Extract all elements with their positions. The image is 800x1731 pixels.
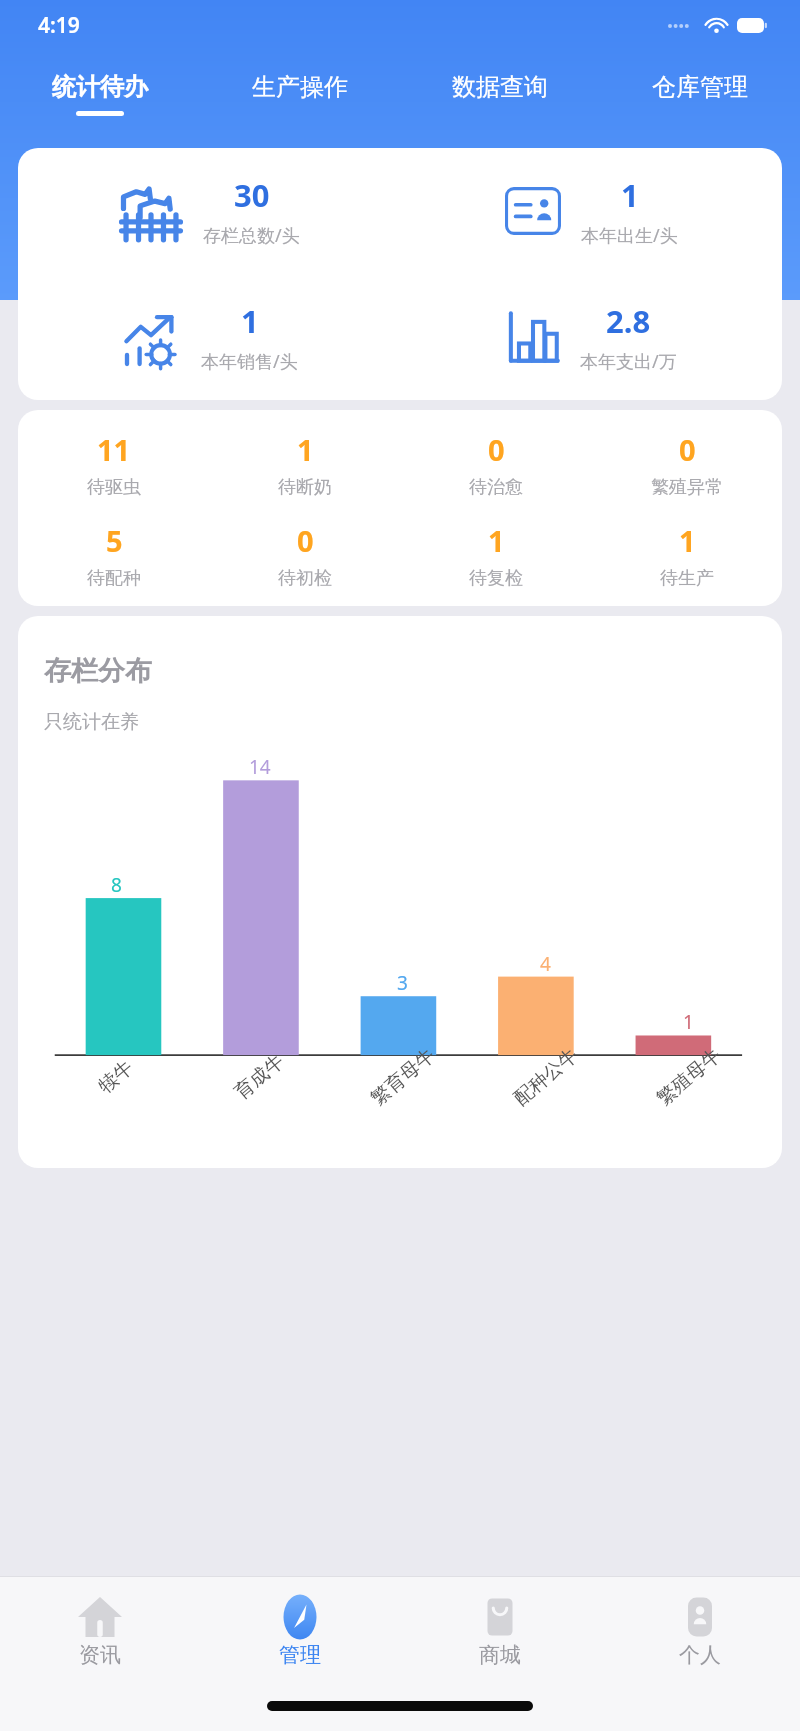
staticText: 犊牛 [94, 1056, 138, 1098]
staticText: 生产操作 [252, 72, 348, 102]
staticText: 1 [241, 300, 259, 342]
button[interactable]: 商城 [400, 1592, 600, 1668]
staticText: 3 [397, 970, 408, 996]
button[interactable]: 1 [209, 430, 400, 499]
button[interactable]: 5 [18, 521, 209, 590]
staticText: 1 [488, 521, 505, 560]
staticText: 0 [679, 430, 696, 469]
staticText: 待断奶 [278, 476, 332, 499]
button[interactable]: 数据查询 [400, 50, 600, 138]
staticText: 育成牛 [230, 1049, 289, 1104]
staticText: 8 [111, 872, 122, 898]
button[interactable]: Herd total [18, 148, 400, 274]
button[interactable]: 0 [400, 430, 591, 499]
other: Births this year [505, 183, 561, 239]
button[interactable]: Births this year [400, 148, 782, 274]
staticText: 11 [97, 430, 131, 469]
staticText: 14 [249, 754, 271, 780]
staticText: 存栏分布 [44, 654, 152, 688]
staticText: 4 [540, 951, 551, 977]
staticText: 本年销售/头 [201, 349, 298, 374]
staticText: 1 [679, 521, 696, 560]
staticText: 只统计在养 [44, 710, 139, 734]
button[interactable]: 管理 [200, 1592, 400, 1668]
other: 个人 [675, 1592, 725, 1642]
staticText: 待配种 [87, 567, 141, 590]
staticText: 存栏总数/头 [203, 223, 300, 248]
staticText: 数据查询 [452, 72, 548, 102]
button[interactable]: Expenses this year [400, 274, 782, 400]
staticText: 繁殖母牛 [652, 1043, 726, 1111]
other: 管理 [275, 1592, 325, 1642]
staticText: 配种公牛 [509, 1043, 583, 1111]
button[interactable]: 个人 [600, 1592, 800, 1668]
staticText: 待驱虫 [87, 476, 141, 499]
other: Herd total [119, 179, 183, 243]
other: 资讯 [75, 1592, 125, 1642]
button[interactable]: 资讯 [0, 1592, 200, 1668]
button[interactable]: 11 [18, 430, 209, 499]
other: Sales this year [121, 307, 181, 367]
other: Expenses this year [506, 310, 560, 364]
staticText: 0 [297, 521, 314, 560]
staticText: 0 [488, 430, 505, 469]
staticText: 待初检 [278, 567, 332, 590]
staticText: 2.8 [606, 300, 651, 342]
staticText: 个人 [679, 1642, 721, 1668]
staticText: 待治愈 [469, 476, 523, 499]
staticText: 繁殖异常 [651, 476, 723, 499]
staticText: 1 [683, 1009, 694, 1035]
staticText: 商城 [479, 1642, 521, 1668]
button[interactable]: 生产操作 [200, 50, 400, 138]
staticText: 待复检 [469, 567, 523, 590]
button[interactable]: 仓库管理 [600, 50, 800, 138]
staticText: 4:19 [38, 11, 80, 40]
staticText: 待生产 [660, 567, 714, 590]
staticText: 管理 [279, 1642, 321, 1668]
staticText: 30 [234, 174, 270, 216]
button[interactable]: 1 [400, 521, 591, 590]
staticText: 仓库管理 [652, 72, 748, 102]
button[interactable]: 1 [591, 521, 782, 590]
button[interactable]: 统计待办 [0, 50, 200, 138]
button[interactable]: 0 [209, 521, 400, 590]
staticText: 统计待办 [52, 72, 148, 102]
staticText: 本年支出/万 [580, 349, 677, 374]
other: 商城 [475, 1592, 525, 1642]
button[interactable]: 0 [591, 430, 782, 499]
staticText: 繁育母牛 [366, 1043, 440, 1111]
button[interactable]: Sales this year [18, 274, 400, 400]
staticText: 1 [297, 430, 314, 469]
staticText: 5 [106, 521, 123, 560]
staticText: 本年出生/头 [581, 223, 678, 248]
staticText: 1 [621, 174, 639, 216]
staticText: 资讯 [79, 1642, 121, 1668]
